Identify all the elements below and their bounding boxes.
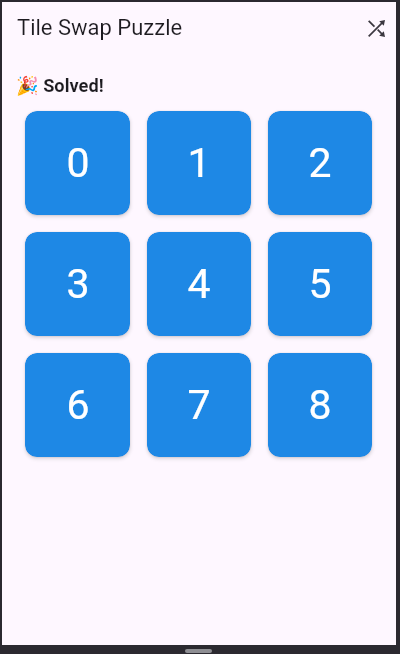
staticText: Tile Swap Puzzle bbox=[17, 15, 183, 41]
staticText: 2 bbox=[308, 139, 332, 187]
button[interactable]: 0 bbox=[25, 111, 130, 215]
staticText: 3 bbox=[66, 260, 90, 308]
button[interactable]: 1 bbox=[147, 111, 251, 215]
button[interactable]: Shuffle tiles bbox=[354, 6, 398, 50]
staticText: 🎉 Solved! bbox=[16, 75, 104, 96]
staticText: 7 bbox=[187, 381, 211, 429]
button[interactable]: 8 bbox=[268, 353, 372, 457]
staticText: 6 bbox=[66, 381, 90, 429]
button[interactable]: 3 bbox=[25, 232, 130, 336]
staticText: 1 bbox=[187, 139, 211, 187]
button[interactable]: 5 bbox=[268, 232, 372, 336]
button[interactable]: 4 bbox=[147, 232, 251, 336]
staticText: 0 bbox=[66, 139, 90, 187]
staticText: 5 bbox=[308, 260, 332, 308]
staticText: 8 bbox=[308, 381, 332, 429]
staticText: 4 bbox=[187, 260, 211, 308]
button[interactable]: 7 bbox=[147, 353, 251, 457]
button[interactable]: 6 bbox=[25, 353, 130, 457]
button[interactable]: 2 bbox=[268, 111, 372, 215]
